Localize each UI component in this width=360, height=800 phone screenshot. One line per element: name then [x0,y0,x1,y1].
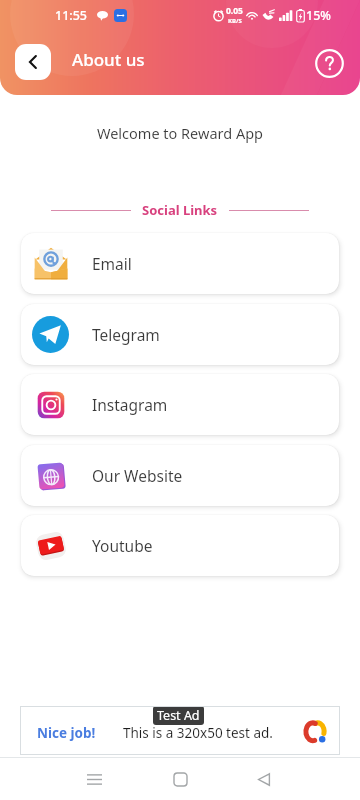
staticText: Telegram [92,324,160,345]
staticText: Email [92,253,132,274]
staticText: Test Ad [157,707,200,724]
staticText: Youtube [92,535,153,556]
button[interactable]: Help [314,48,345,79]
button[interactable]: Recent apps [72,758,116,800]
button[interactable]: Back [15,44,51,80]
button[interactable]: Telegram [21,304,339,365]
staticText: KB/S [228,17,242,25]
staticText: Social Links [142,201,218,219]
button[interactable]: Instagram [21,374,339,435]
staticText: Instagram [92,394,168,415]
staticText: Welcome to Reward App [0,123,360,143]
staticText: About us [72,48,145,71]
button[interactable]: Home [158,758,202,800]
button[interactable]: Back [242,758,286,800]
staticText: Nice job! [37,724,96,742]
button[interactable]: Our Website [21,445,339,506]
staticText: 15% [306,7,331,24]
staticText: 0.05 [226,5,243,17]
button[interactable]: Email [21,233,339,294]
button[interactable]: Youtube [21,515,339,576]
staticText: Our Website [92,465,183,486]
staticText: This is a 320x50 test ad. [123,724,273,742]
staticText: 11:55 [55,7,88,24]
